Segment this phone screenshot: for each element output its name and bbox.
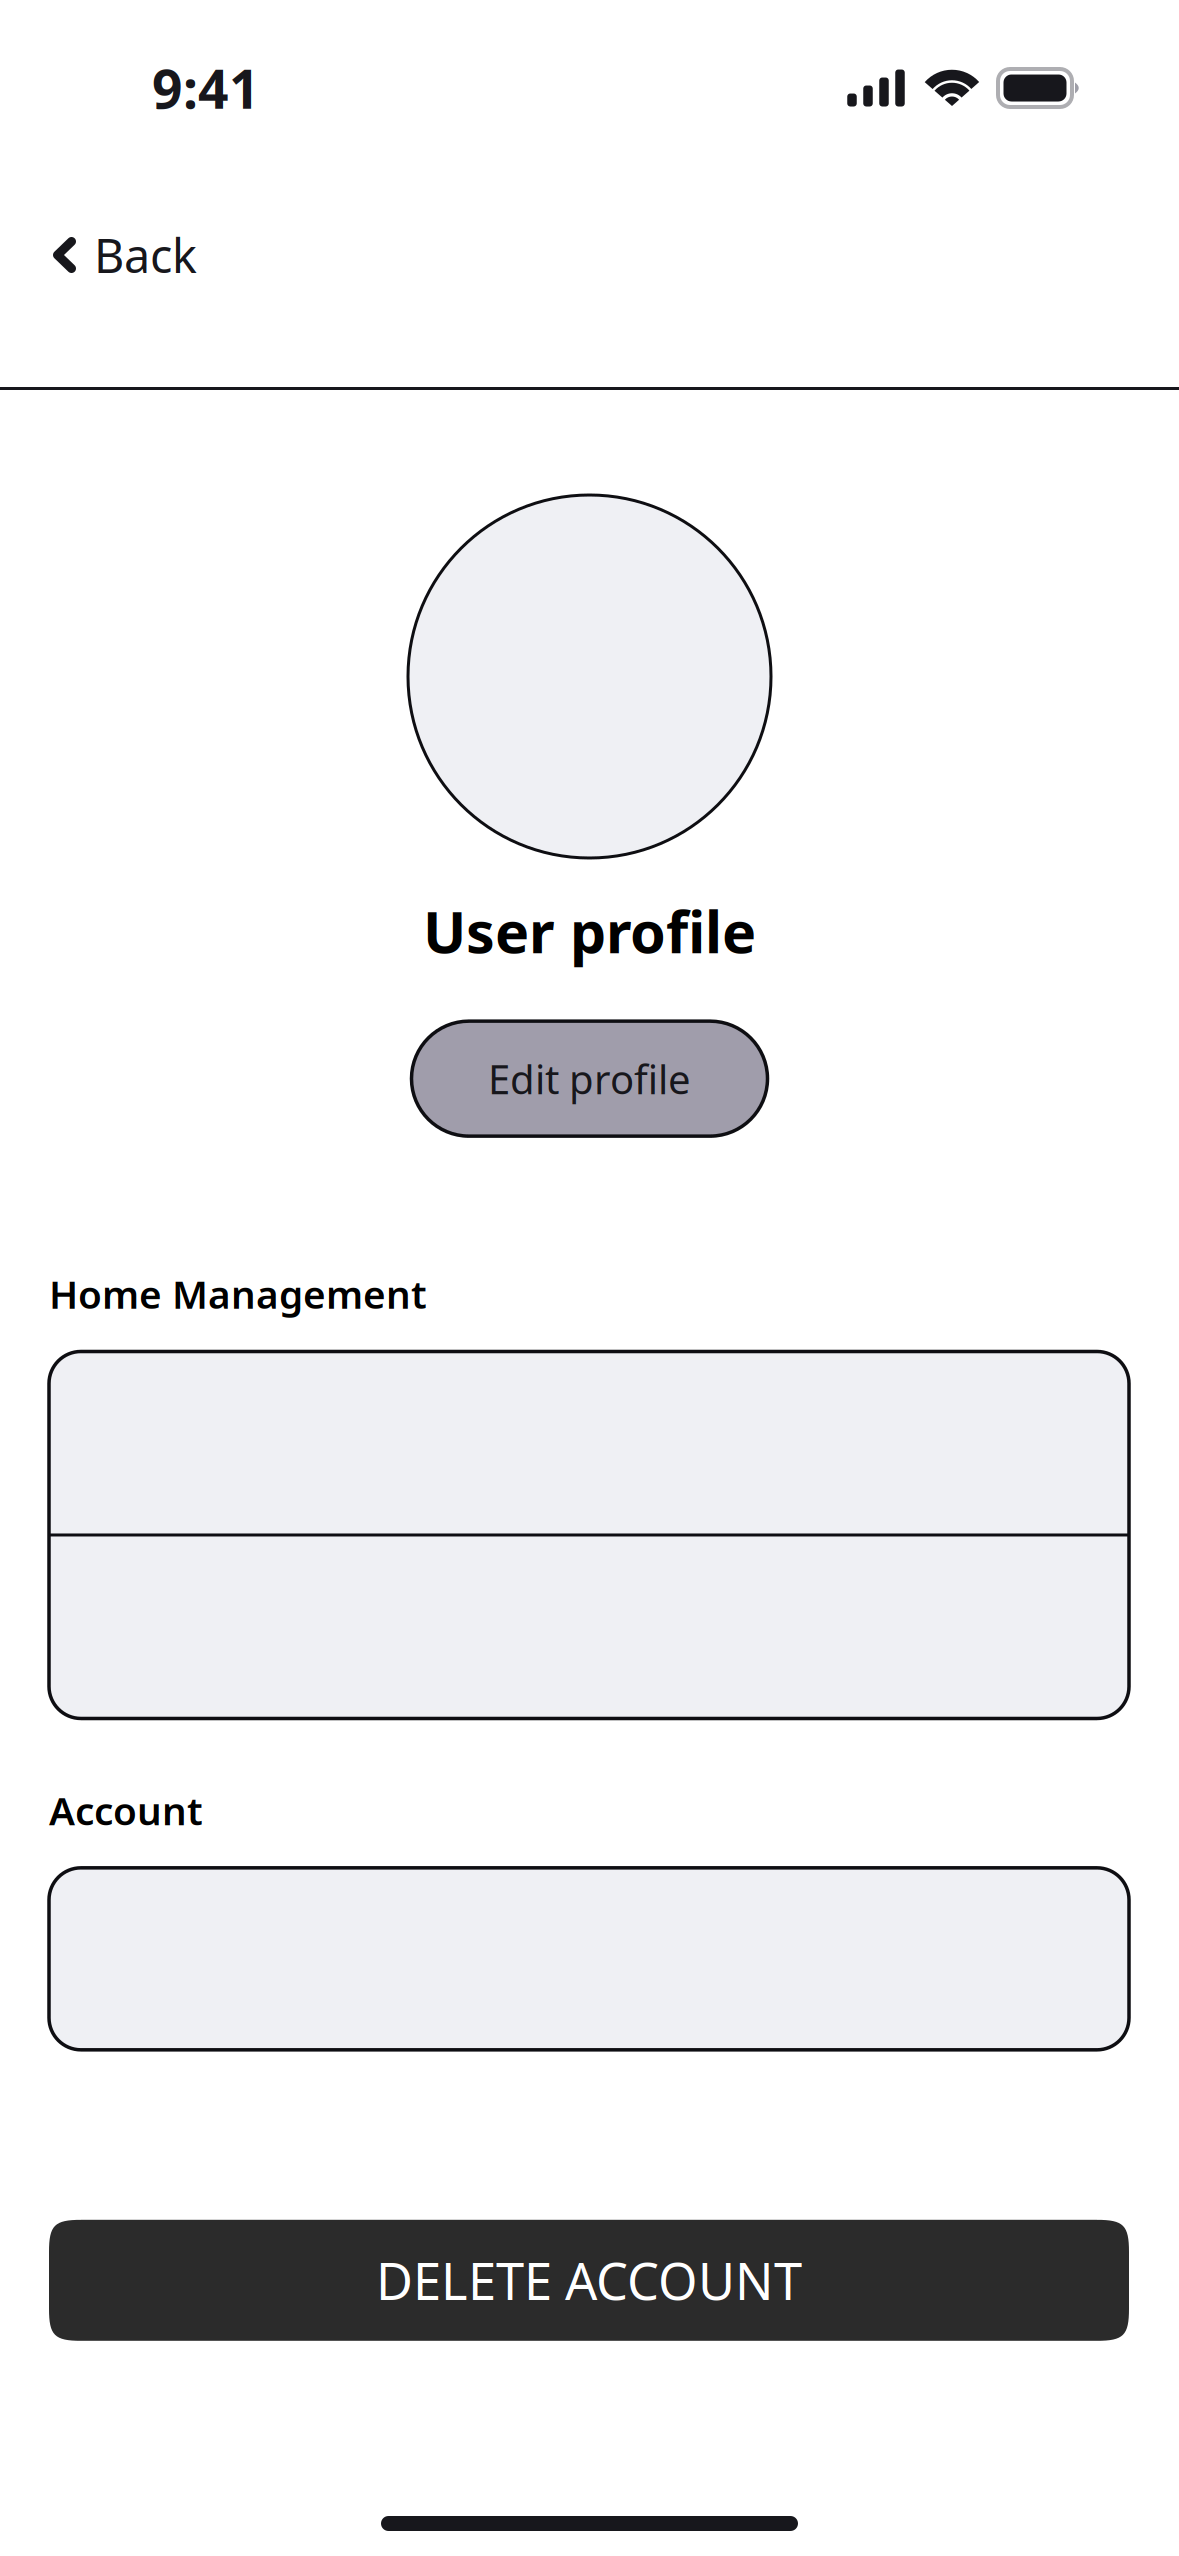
staticText: Edit profile: [488, 1052, 691, 1105]
staticText: Home Management: [49, 1268, 427, 1319]
button[interactable]: Account settings: [49, 1868, 1129, 2050]
staticText: DELETE ACCOUNT: [376, 2247, 802, 2314]
staticText: Account: [49, 1784, 203, 1836]
staticText: 9:41: [152, 53, 260, 123]
button[interactable]: DELETE ACCOUNT: [49, 2220, 1129, 2341]
button[interactable]: My home: [49, 1351, 1129, 1533]
button[interactable]: Profile photo: [408, 495, 771, 858]
button[interactable]: Members: [49, 1536, 1129, 1718]
button[interactable]: Edit profile: [411, 1021, 767, 1136]
staticText: Back: [94, 224, 197, 286]
staticText: User profile: [423, 893, 756, 969]
button[interactable]: Back: [0, 205, 229, 305]
